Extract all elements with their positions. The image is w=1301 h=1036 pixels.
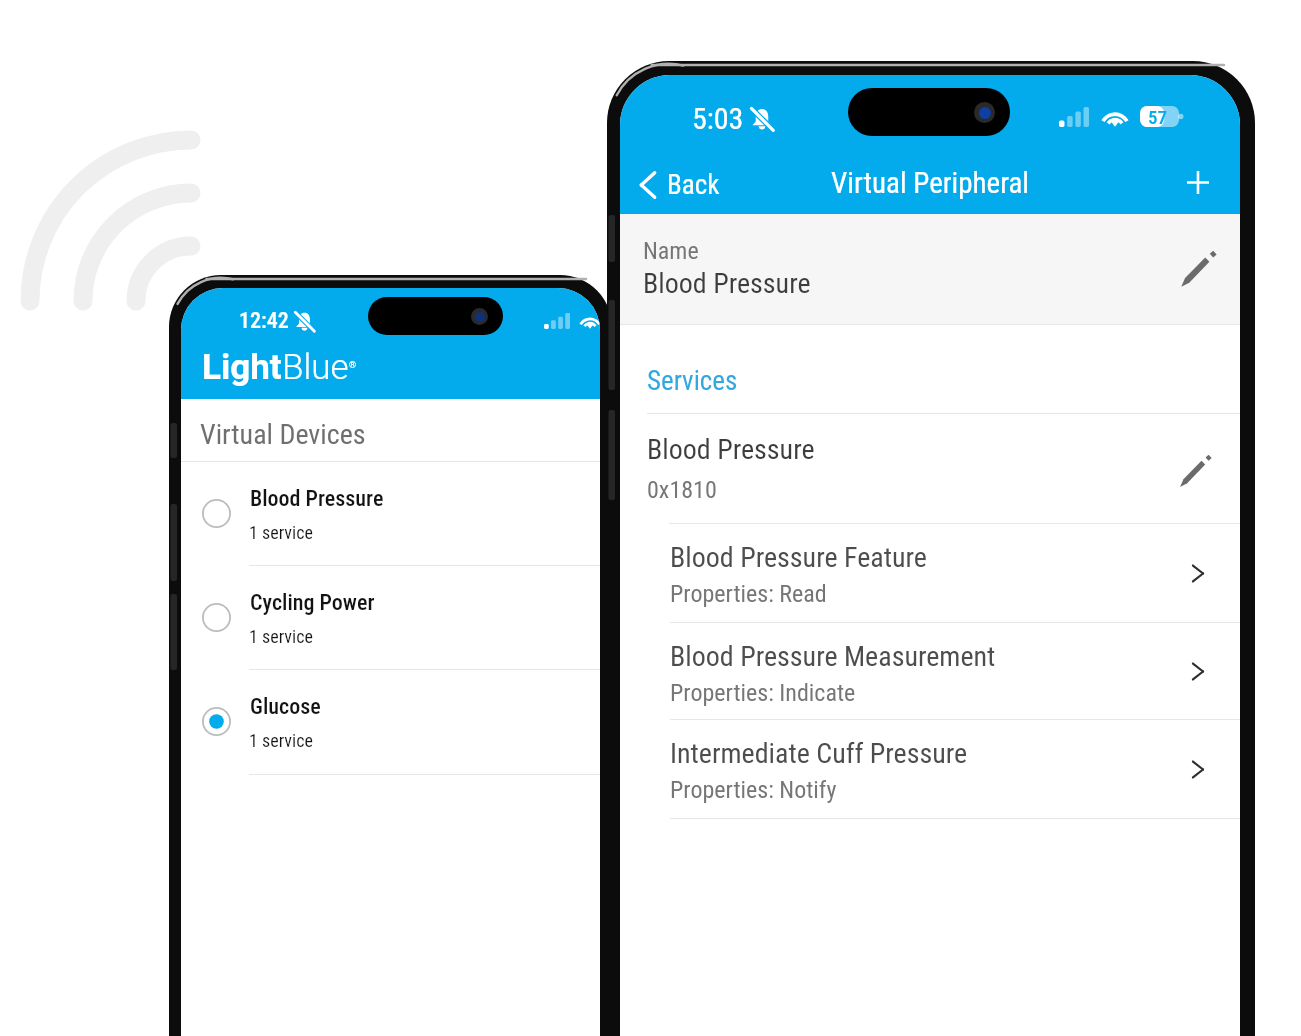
- button[interactable]: Intermediate Cuff Pressure: [620, 720, 1240, 819]
- staticText: 12:42: [239, 308, 289, 334]
- staticText: Blood Pressure: [647, 433, 815, 466]
- staticText: Blue: [282, 347, 349, 388]
- button[interactable]: Blood Pressure Feature: [620, 524, 1240, 623]
- button[interactable]: Glucose: [181, 670, 600, 775]
- staticText: Blood Pressure: [250, 486, 384, 512]
- button[interactable]: Add: [1176, 160, 1220, 204]
- staticText: ®: [349, 360, 357, 371]
- staticText: Blood Pressure Measurement: [670, 640, 996, 673]
- staticText: 57: [1148, 106, 1168, 127]
- staticText: Properties: Indicate: [670, 679, 856, 707]
- staticText: Back: [667, 169, 720, 201]
- staticText: Name: [643, 237, 699, 265]
- button[interactable]: Blood Pressure: [620, 414, 1240, 523]
- staticText: Virtual Devices: [200, 418, 366, 451]
- staticText: Services: [647, 365, 738, 397]
- button[interactable]: Cycling Power: [181, 566, 600, 670]
- staticText: 1 service: [249, 522, 313, 543]
- staticText: Glucose: [250, 694, 321, 720]
- button[interactable]: Back: [634, 163, 726, 207]
- staticText: Light: [202, 347, 282, 388]
- button[interactable]: Blood Pressure Measurement: [620, 623, 1240, 720]
- staticText: Cycling Power: [250, 590, 375, 616]
- staticText: Virtual Peripheral: [831, 166, 1029, 200]
- staticText: 5:03: [692, 101, 744, 136]
- staticText: 1 service: [249, 626, 313, 647]
- button[interactable]: Blood Pressure: [181, 462, 600, 566]
- staticText: Properties: Notify: [670, 776, 837, 804]
- button[interactable]: Name: [620, 214, 1240, 324]
- staticText: Properties: Read: [670, 580, 827, 608]
- staticText: 1 service: [249, 730, 313, 751]
- staticText: Intermediate Cuff Pressure: [670, 737, 968, 770]
- staticText: 0x1810: [647, 476, 717, 504]
- staticText: Blood Pressure: [643, 267, 811, 300]
- staticText: Blood Pressure Feature: [670, 541, 927, 574]
